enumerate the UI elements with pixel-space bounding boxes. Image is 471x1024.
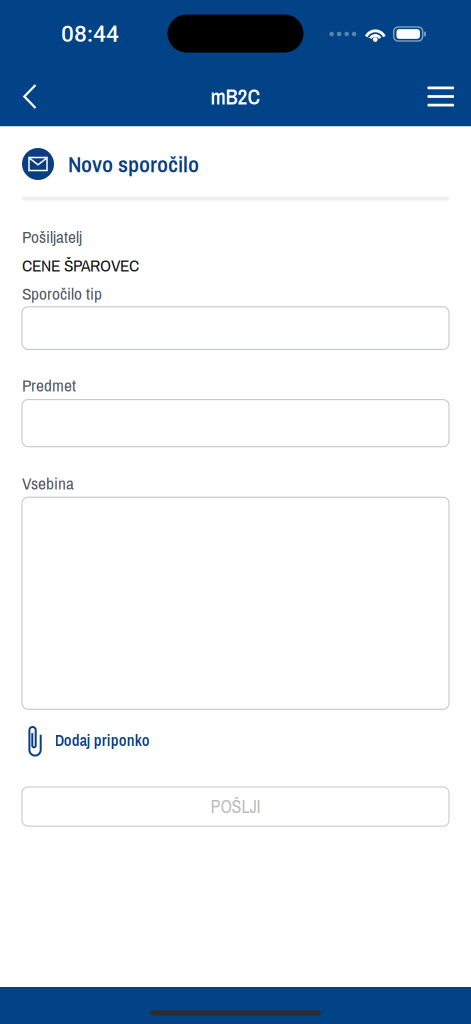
- staticText: POŠLJI: [210, 794, 260, 819]
- button[interactable]: POŠLJI: [22, 787, 449, 826]
- staticText: Sporočilo tip: [22, 282, 102, 305]
- staticText: Dodaj priponko: [55, 729, 150, 751]
- staticText: CENE ŠPAROVEC: [22, 253, 139, 277]
- button[interactable]: Dodaj priponko: [22, 727, 449, 754]
- button[interactable]: Menu: [401, 67, 471, 125]
- staticText: 08:44: [61, 21, 119, 47]
- staticText: mB2C: [210, 82, 260, 111]
- button[interactable]: Back: [0, 67, 66, 125]
- staticText: Pošiljatelj: [22, 225, 82, 248]
- staticText: Predmet: [22, 373, 76, 397]
- staticText: Novo sporočilo: [68, 149, 199, 179]
- staticText: Vsebina: [22, 471, 74, 495]
